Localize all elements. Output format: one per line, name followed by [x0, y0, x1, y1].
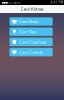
staticText: Care Consult — [19, 49, 42, 55]
staticText: Care Show — [19, 19, 38, 24]
button[interactable]: Care Show — [9, 17, 53, 26]
staticText: Care Coverage — [19, 39, 46, 44]
staticText: ●●●○○ Carrier — [1, 1, 21, 4]
button[interactable]: Care Tips — [9, 27, 53, 36]
staticText: Care Tips — [19, 29, 36, 34]
staticText: 4:41 PM — [50, 1, 62, 4]
staticText: Care Videos — [20, 6, 43, 12]
button[interactable]: Care Consult — [9, 48, 53, 56]
button[interactable]: Care Coverage — [9, 38, 53, 46]
